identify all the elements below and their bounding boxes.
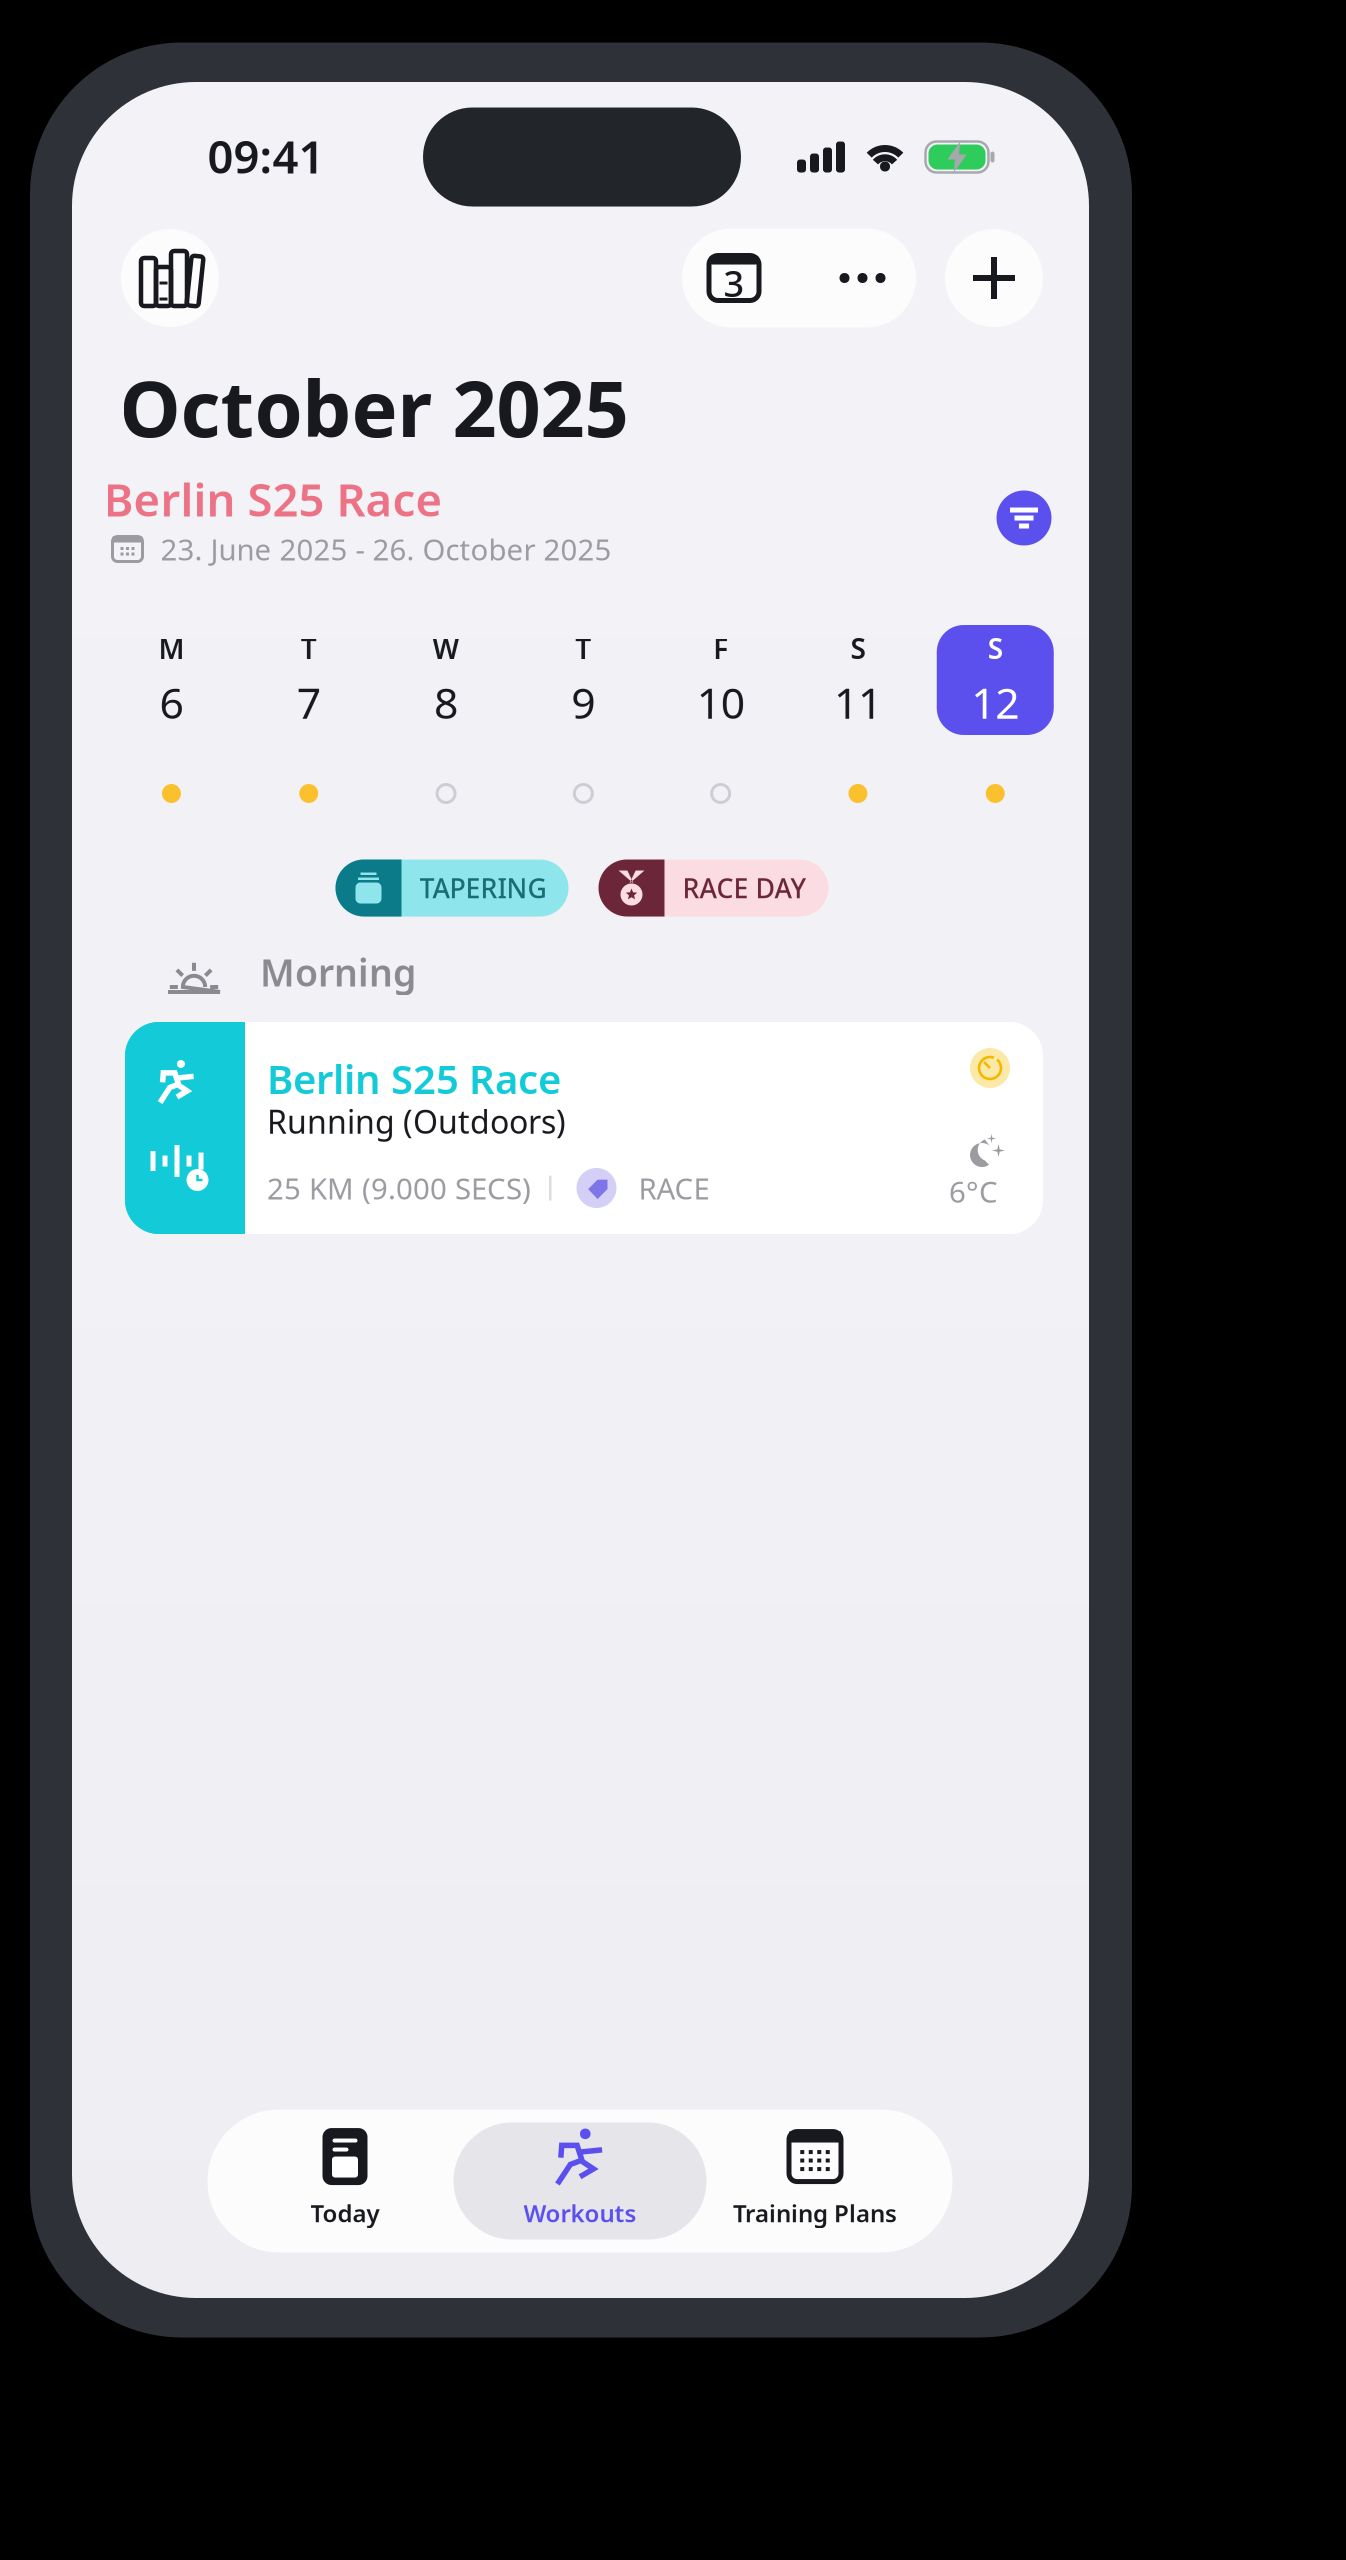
staticText: Today [310, 2197, 379, 2229]
staticText: S [988, 630, 1003, 667]
button[interactable]: W [377, 625, 515, 735]
button[interactable]: Workouts [462, 2122, 697, 2239]
staticText: Running (Outdoors) [267, 1100, 566, 1142]
staticText: 12 [971, 674, 1019, 730]
button[interactable]: Training Plans [697, 2122, 932, 2239]
staticText: 11 [834, 674, 882, 730]
staticText: T [575, 630, 591, 667]
staticText: T [301, 630, 317, 667]
staticText: 8 [434, 674, 458, 730]
staticText: F [713, 630, 728, 667]
button[interactable]: Library [121, 229, 219, 327]
button[interactable]: T [240, 625, 377, 735]
staticText: 6 [159, 674, 183, 730]
staticText: 09:41 [207, 126, 324, 186]
staticText: RACE DAY [682, 870, 806, 906]
staticText: Workouts [523, 2197, 636, 2229]
button[interactable]: Berlin S25 Race [125, 1022, 1043, 1234]
staticText: 6°C [949, 1172, 998, 1211]
staticText: S [850, 630, 865, 667]
staticText: M [158, 630, 184, 667]
button[interactable]: Filter [996, 490, 1051, 545]
button[interactable]: Add [945, 229, 1043, 327]
staticText: Training Plans [733, 2197, 897, 2229]
button[interactable]: F [652, 625, 789, 735]
staticText: Morning [260, 947, 416, 997]
button[interactable]: RACE DAY [598, 859, 828, 916]
staticText: TAPERING [419, 870, 546, 906]
staticText: 3 [723, 259, 744, 307]
staticText: Berlin S25 Race [267, 1052, 561, 1105]
button[interactable]: T [515, 625, 652, 735]
staticText: Berlin S25 Race [103, 469, 442, 529]
button[interactable]: S [927, 625, 1064, 735]
staticText: 9 [571, 674, 595, 730]
staticText: W [433, 630, 460, 667]
staticText: RACE [638, 1168, 709, 1207]
button[interactable]: Options [682, 228, 916, 327]
staticText: 7 [297, 674, 321, 730]
button[interactable]: S [789, 625, 927, 735]
button[interactable]: M [103, 625, 240, 735]
button[interactable]: Today [227, 2122, 462, 2239]
staticText: October 2025 [119, 356, 628, 458]
staticText: 25 KM (9.000 SECS) [267, 1168, 531, 1207]
staticText: 23. June 2025 - 26. October 2025 [160, 529, 611, 568]
button[interactable]: TAPERING [335, 859, 568, 916]
staticText: 10 [697, 674, 745, 730]
